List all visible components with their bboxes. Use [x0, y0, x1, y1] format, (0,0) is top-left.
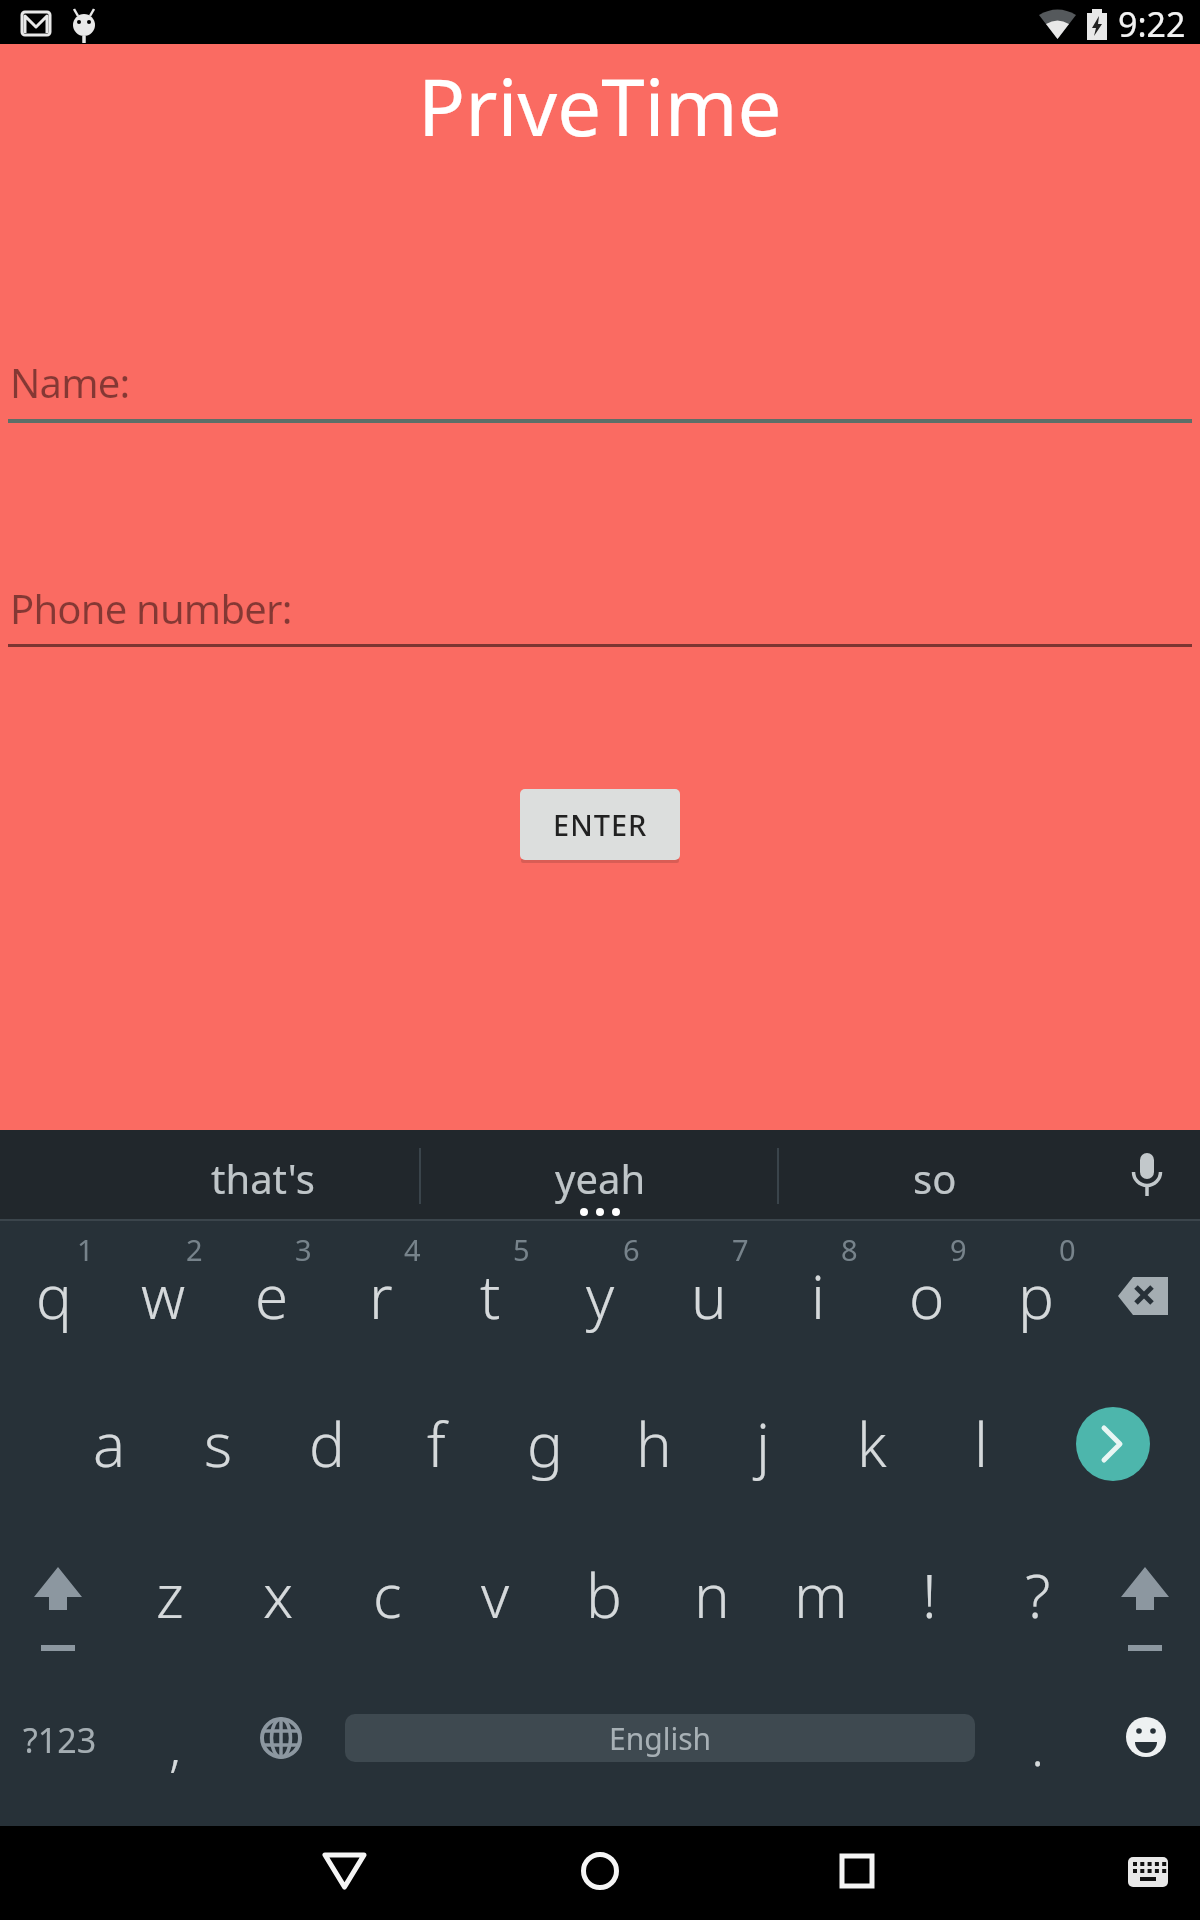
staticText: 2 — [186, 1230, 203, 1269]
staticText: that's — [211, 1151, 315, 1205]
button[interactable]: k — [822, 1384, 922, 1504]
staticText: . — [1031, 1708, 1045, 1782]
staticText: x — [263, 1554, 294, 1636]
button[interactable]: t — [440, 1236, 540, 1356]
button[interactable]: ?123 — [5, 1695, 115, 1785]
staticText: h — [636, 1403, 672, 1485]
button[interactable]: a — [59, 1384, 159, 1504]
staticText: z — [156, 1554, 184, 1636]
staticText: 8 — [841, 1230, 858, 1269]
button[interactable]: b — [554, 1535, 654, 1655]
button[interactable] — [315, 1845, 375, 1897]
button[interactable]: . — [993, 1695, 1083, 1795]
staticText: i — [811, 1255, 825, 1337]
button[interactable]: that's — [123, 1143, 403, 1213]
staticText: u — [691, 1255, 727, 1337]
staticText: t — [480, 1255, 501, 1337]
button[interactable]: p — [986, 1236, 1086, 1356]
button[interactable]: c — [337, 1535, 437, 1655]
button[interactable] — [825, 1845, 885, 1897]
button[interactable]: m — [771, 1535, 871, 1655]
button[interactable]: v — [445, 1535, 545, 1655]
button[interactable]: u — [659, 1236, 759, 1356]
button[interactable]: h — [604, 1384, 704, 1504]
staticText: m — [794, 1554, 848, 1636]
staticText: ! — [922, 1554, 937, 1636]
staticText: y — [586, 1255, 615, 1337]
button[interactable]: o — [877, 1236, 977, 1356]
button[interactable]: ENTER — [520, 789, 680, 860]
staticText: , — [169, 1708, 182, 1782]
button[interactable]: s — [168, 1384, 268, 1504]
staticText: PriveTime — [418, 53, 782, 157]
staticText: Name: — [10, 355, 130, 409]
staticText: p — [1018, 1255, 1054, 1337]
staticText: d — [309, 1403, 345, 1485]
button[interactable]: ? — [988, 1535, 1088, 1655]
staticText: yeah — [555, 1151, 646, 1205]
staticText: w — [141, 1255, 186, 1337]
button[interactable]: x — [228, 1535, 328, 1655]
staticText: 6 — [623, 1230, 640, 1269]
button[interactable]: f — [386, 1384, 486, 1504]
staticText: e — [255, 1255, 289, 1337]
button[interactable]: d — [277, 1384, 377, 1504]
staticText: 1 — [77, 1230, 94, 1269]
button[interactable]: r — [331, 1236, 431, 1356]
staticText: ? — [1025, 1554, 1051, 1636]
button[interactable] — [1076, 1407, 1150, 1481]
staticText: English — [609, 1718, 712, 1759]
staticText: Phone number: — [10, 581, 292, 635]
staticText: o — [909, 1255, 945, 1337]
staticText: 9:22 — [1118, 1, 1186, 45]
staticText: 7 — [732, 1230, 749, 1269]
staticText: l — [974, 1403, 988, 1485]
staticText: b — [586, 1554, 622, 1636]
button[interactable]: yeah — [460, 1143, 740, 1213]
staticText: 5 — [513, 1230, 530, 1269]
staticText: c — [373, 1554, 402, 1636]
staticText: ?123 — [23, 1717, 97, 1763]
button[interactable] — [570, 1845, 630, 1897]
staticText: r — [369, 1255, 393, 1337]
staticText: n — [694, 1554, 730, 1636]
button[interactable]: i — [768, 1236, 868, 1356]
staticText: s — [204, 1403, 233, 1485]
button[interactable]: w — [113, 1236, 213, 1356]
button[interactable]: n — [662, 1535, 762, 1655]
staticText: ENTER — [553, 805, 648, 844]
staticText: 0 — [1059, 1230, 1076, 1269]
button[interactable]: l — [931, 1384, 1031, 1504]
button[interactable]: j — [713, 1384, 813, 1504]
button[interactable]: z — [120, 1535, 220, 1655]
staticText: f — [427, 1403, 446, 1485]
button[interactable]: e — [222, 1236, 322, 1356]
button[interactable]: g — [495, 1384, 595, 1504]
button[interactable]: ! — [879, 1535, 979, 1655]
button[interactable]: English — [345, 1714, 975, 1762]
staticText: so — [913, 1151, 957, 1205]
button[interactable]: q — [4, 1236, 104, 1356]
staticText: v — [481, 1554, 510, 1636]
staticText: q — [36, 1255, 72, 1337]
staticText: k — [857, 1403, 887, 1485]
button[interactable]: , — [130, 1695, 220, 1795]
staticText: 4 — [404, 1230, 421, 1269]
button[interactable]: so — [815, 1143, 1055, 1213]
staticText: 3 — [295, 1230, 312, 1269]
staticText: 9 — [950, 1230, 967, 1269]
button[interactable]: y — [550, 1236, 650, 1356]
staticText: g — [527, 1403, 563, 1485]
staticText: a — [93, 1403, 126, 1485]
staticText: j — [756, 1403, 770, 1485]
